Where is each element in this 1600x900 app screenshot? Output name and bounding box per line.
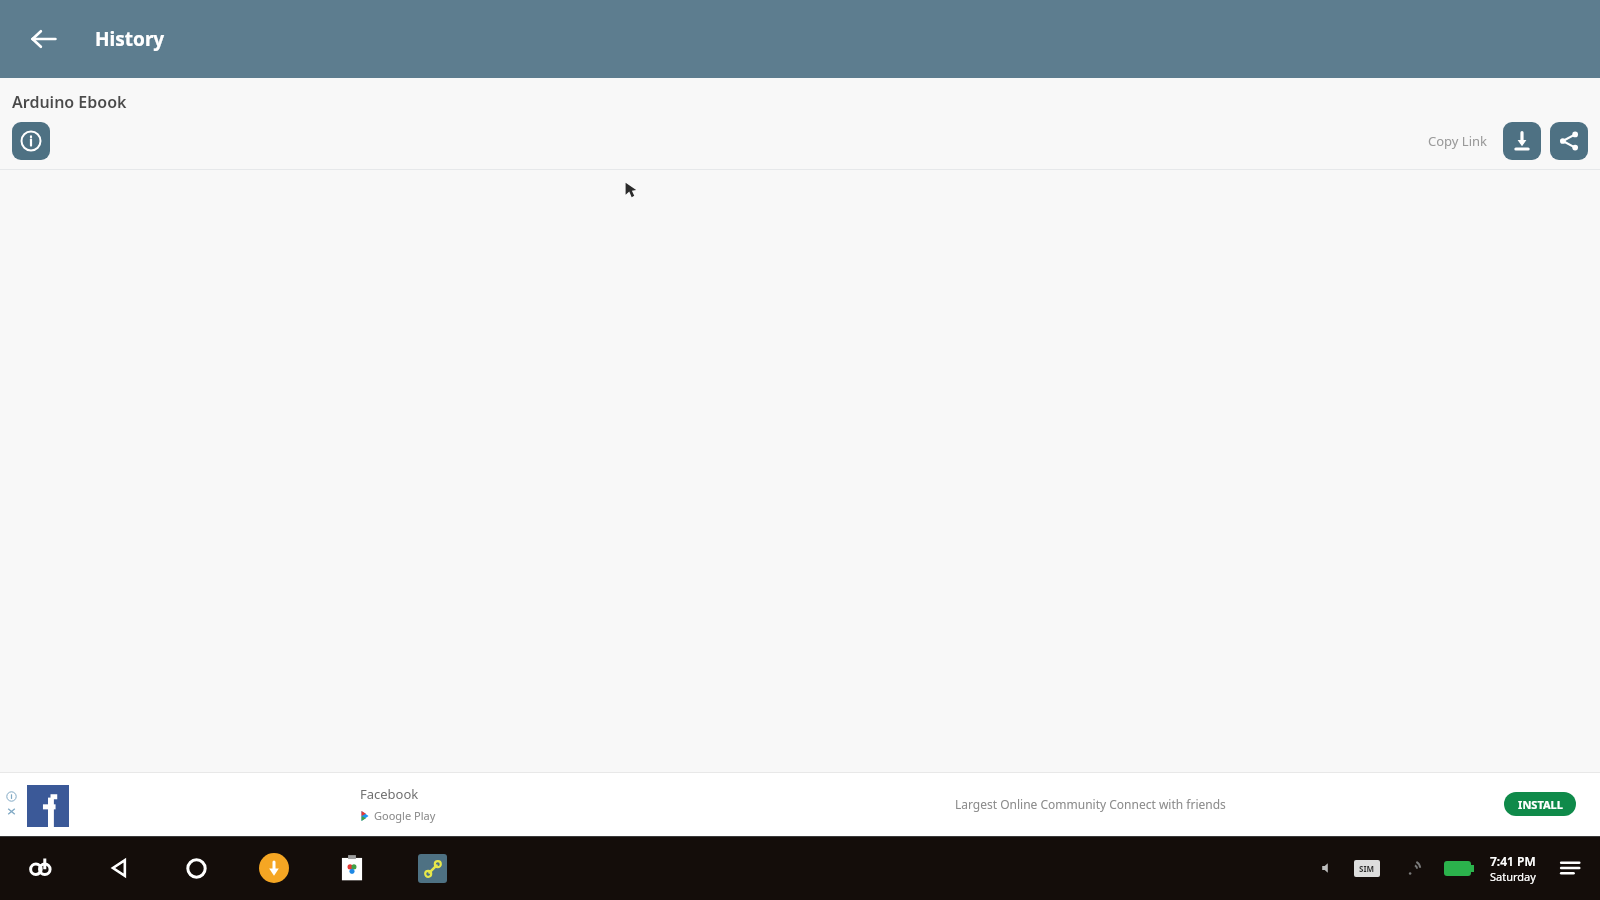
button[interactable]: Home: [172, 844, 220, 892]
staticText: Copy Link: [1428, 132, 1487, 150]
button[interactable]: Share: [1550, 122, 1588, 160]
button[interactable]: Details: [12, 122, 50, 160]
staticText: Facebook: [360, 785, 419, 803]
button[interactable]: Menu: [1550, 848, 1590, 888]
button[interactable]: Copy Link: [1422, 128, 1493, 154]
button[interactable]: App logo: [18, 846, 62, 890]
button[interactable]: Link: [410, 846, 454, 890]
staticText: INSTALL: [1518, 797, 1563, 812]
button[interactable]: Back: [20, 15, 68, 63]
button[interactable]: Downloads: [252, 846, 296, 890]
staticText: History: [95, 26, 165, 52]
staticText: 7:41 PM: [1490, 853, 1536, 869]
staticText: Saturday: [1490, 869, 1536, 884]
button[interactable]: Download: [1503, 122, 1541, 160]
staticText: SIM: [1359, 863, 1375, 874]
button[interactable]: Back: [96, 844, 144, 892]
button[interactable]: INSTALL: [1504, 792, 1576, 816]
staticText: Largest Online Community Connect with fr…: [955, 796, 1226, 812]
staticText: Arduino Ebook: [12, 91, 127, 113]
staticText: Google Play: [374, 808, 436, 823]
button[interactable]: Clipboard: [330, 846, 374, 890]
